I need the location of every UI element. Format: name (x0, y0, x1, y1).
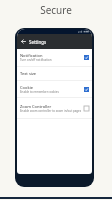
button[interactable]: Notification (17, 49, 92, 67)
staticText: Cookie (20, 85, 34, 90)
staticText: Enable to remember cookies (20, 90, 59, 94)
staticText: Notification (20, 53, 43, 58)
staticText: Secure (40, 3, 72, 17)
staticText: Enable zoom controller to zoom in/out pa… (20, 109, 82, 113)
staticText: Settings (29, 39, 47, 45)
button[interactable]: Back (17, 34, 29, 49)
button[interactable]: Text size (17, 67, 92, 81)
staticText: Text size (20, 71, 37, 76)
button[interactable]: Zoom Controller (17, 98, 92, 119)
staticText: Turn on/off notification (20, 58, 52, 62)
button[interactable]: Cookie (17, 81, 92, 98)
staticText: Zoom Controller (20, 104, 52, 109)
